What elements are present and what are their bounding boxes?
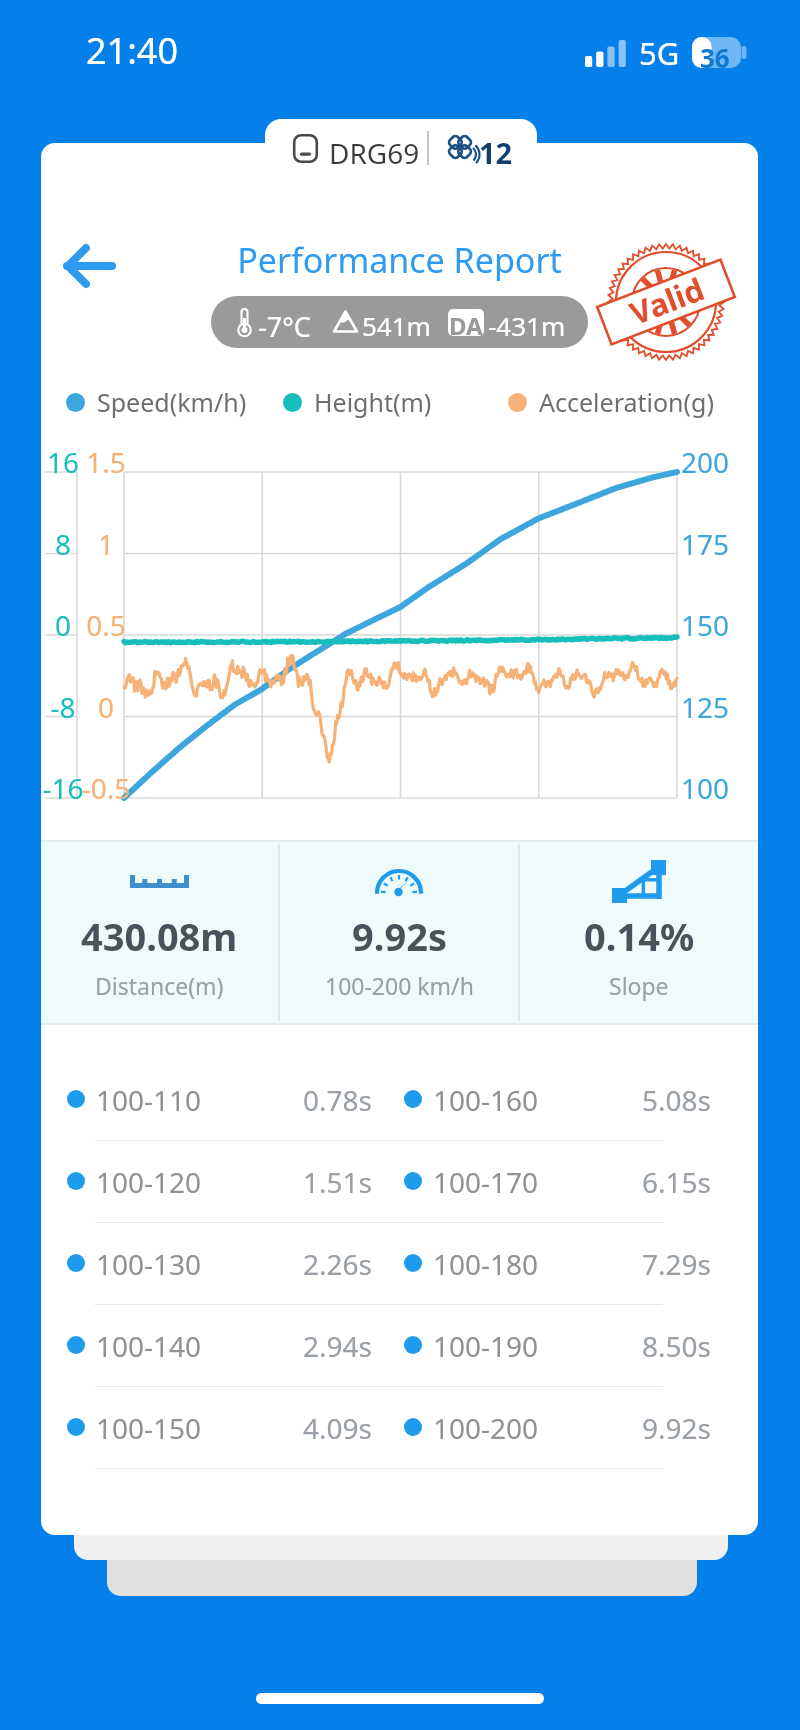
staticText: Distance(m): [95, 970, 224, 1001]
staticText: 0: [76, 688, 136, 726]
staticText: 100-200 km/h: [325, 970, 474, 1001]
button[interactable]: 430.08m: [41, 840, 278, 1025]
staticText: DA: [449, 309, 483, 336]
staticText: Performance Report: [41, 237, 758, 283]
staticText: 100-160: [433, 1081, 539, 1117]
staticText: -8: [41, 688, 87, 726]
staticText: 200: [681, 443, 730, 481]
staticText: 16: [41, 443, 87, 481]
staticText: 9.92s: [352, 910, 447, 962]
staticText: 7.29s: [642, 1245, 711, 1281]
staticText: Height(m): [314, 385, 432, 419]
button[interactable]: 100-140: [67, 1327, 372, 1363]
staticText: 100-180: [433, 1245, 539, 1281]
staticText: 5G: [639, 32, 680, 74]
button[interactable]: 100-160: [404, 1081, 711, 1117]
staticText: 4.09s: [303, 1409, 372, 1445]
staticText: 100-110: [96, 1081, 202, 1117]
staticText: -7°C: [258, 308, 311, 345]
button[interactable]: 100-110: [67, 1081, 372, 1117]
button[interactable]: 100-200: [404, 1409, 711, 1445]
staticText: 100-170: [433, 1163, 539, 1199]
button[interactable]: 9.92s: [280, 840, 518, 1025]
staticText: -16: [41, 769, 87, 807]
staticText: 100-140: [96, 1327, 202, 1363]
staticText: 8.50s: [642, 1327, 711, 1363]
staticText: 9.92s: [642, 1409, 711, 1445]
staticText: 2.94s: [303, 1327, 372, 1363]
button[interactable]: 100-150: [67, 1409, 372, 1445]
staticText: 430.08m: [81, 910, 238, 962]
staticText: DRG69: [329, 134, 420, 172]
button[interactable]: Back: [48, 226, 128, 306]
staticText: 175: [681, 525, 730, 563]
staticText: 36: [700, 40, 730, 71]
button[interactable]: DRG69: [265, 119, 537, 177]
button[interactable]: 100-120: [67, 1163, 372, 1199]
staticText: 100-190: [433, 1327, 539, 1363]
staticText: 100-150: [96, 1409, 202, 1445]
staticText: 6.15s: [642, 1163, 711, 1199]
button[interactable]: 100-190: [404, 1327, 711, 1363]
staticText: 541m: [362, 308, 431, 343]
button[interactable]: 0.14%: [520, 840, 758, 1025]
button[interactable]: 100-180: [404, 1245, 711, 1281]
staticText: 0.78s: [303, 1081, 372, 1117]
button[interactable]: 100-170: [404, 1163, 711, 1199]
staticText: 150: [681, 606, 730, 644]
staticText: 8: [41, 525, 87, 563]
staticText: Valid: [624, 267, 710, 334]
staticText: 100: [681, 769, 730, 807]
staticText: 5.08s: [642, 1081, 711, 1117]
staticText: Speed(km/h): [97, 385, 247, 419]
staticText: 0.5: [76, 606, 136, 644]
staticText: 0.14%: [584, 910, 695, 962]
staticText: 21:40: [86, 26, 179, 75]
staticText: 100-120: [96, 1163, 202, 1199]
staticText: 125: [681, 688, 730, 726]
staticText: Acceleration(g): [539, 385, 714, 419]
staticText: -431m: [488, 308, 566, 343]
button[interactable]: 100-130: [67, 1245, 372, 1281]
staticText: 1.51s: [303, 1163, 372, 1199]
staticText: 100-130: [96, 1245, 202, 1281]
staticText: 2.26s: [303, 1245, 372, 1281]
staticText: 1.5: [76, 443, 136, 481]
button[interactable]: -7°C: [211, 296, 588, 348]
staticText: Slope: [609, 970, 669, 1001]
staticText: -0.5: [76, 769, 136, 807]
staticText: 1: [76, 525, 136, 563]
staticText: 12: [479, 133, 513, 172]
staticText: 0: [41, 606, 87, 644]
staticText: 100-200: [433, 1409, 539, 1445]
